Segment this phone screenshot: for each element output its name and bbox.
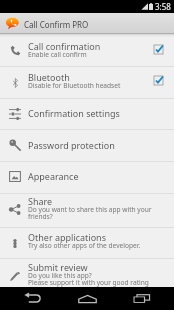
- button[interactable]: Back: [9, 287, 55, 310]
- button[interactable]: Home: [64, 287, 110, 310]
- button[interactable]: Confirmation settings: [0, 99, 174, 129]
- staticText: Password protection: [28, 139, 115, 151]
- staticText: Call Confirm PRO: [24, 19, 89, 30]
- button[interactable]: Appearance: [0, 162, 174, 193]
- button[interactable]: Bluetooth: [0, 67, 174, 98]
- button[interactable]: Submit review: [0, 259, 174, 287]
- staticText: Confirmation settings: [28, 107, 120, 119]
- staticText: Appearance: [28, 170, 79, 182]
- staticText: Bluetooth: [28, 71, 70, 83]
- staticText: Call confirmation: [28, 40, 101, 52]
- button[interactable]: Call confirmation: [0, 34, 174, 66]
- staticText: Submit review: [28, 261, 88, 273]
- staticText: Enable call confirm: [28, 50, 87, 59]
- staticText: Other applications: [28, 231, 106, 243]
- staticText: Do you want to share this app with your …: [28, 205, 172, 221]
- button[interactable]: Share: [0, 194, 174, 227]
- staticText: 3:58: [155, 1, 171, 12]
- button[interactable]: Password protection: [0, 130, 174, 161]
- button[interactable]: Recent apps: [119, 287, 165, 310]
- staticText: Disable for Bluetooth headset: [28, 81, 121, 90]
- button[interactable]: Other applications: [0, 228, 174, 258]
- staticText: Do you like this app? Please support it …: [28, 271, 149, 287]
- staticText: Try also other apps of the developer.: [28, 241, 141, 250]
- staticText: Share: [28, 195, 53, 207]
